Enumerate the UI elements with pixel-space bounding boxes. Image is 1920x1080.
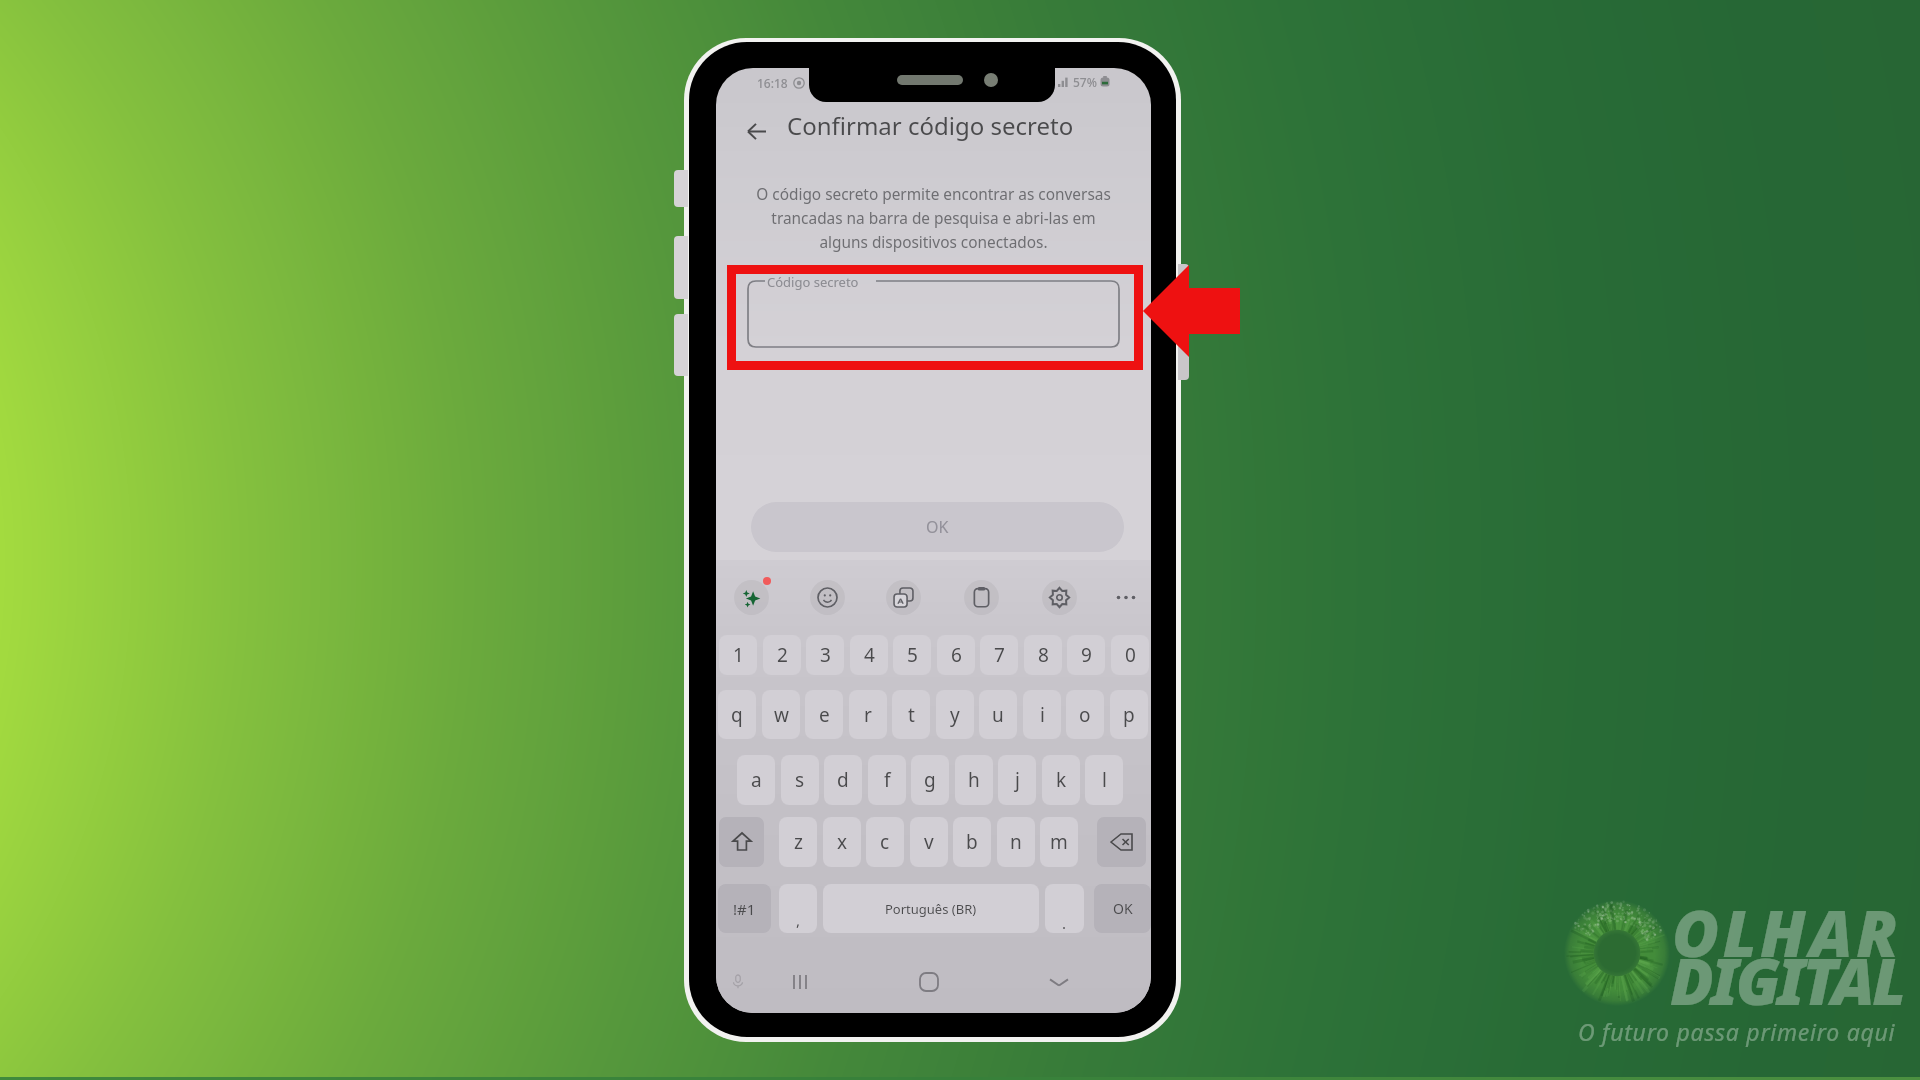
- button[interactable]: t: [892, 690, 930, 739]
- button[interactable]: n: [997, 817, 1035, 867]
- staticText: b: [966, 829, 978, 855]
- button[interactable]: w: [762, 690, 800, 739]
- staticText: l: [1102, 767, 1107, 793]
- button[interactable]: Apagar: [1097, 817, 1146, 867]
- staticText: p: [1123, 702, 1135, 728]
- staticText: OK: [926, 516, 949, 538]
- button[interactable]: c: [866, 817, 904, 867]
- button[interactable]: OK: [1094, 884, 1151, 933]
- staticText: n: [1010, 829, 1022, 855]
- button[interactable]: Sugestões: [734, 580, 769, 615]
- button[interactable]: 2: [763, 635, 801, 675]
- button[interactable]: h: [955, 755, 993, 805]
- button[interactable]: Tradutor: [886, 580, 921, 615]
- staticText: 2: [777, 642, 788, 668]
- staticText: 0: [1125, 642, 1136, 668]
- button[interactable]: g: [911, 755, 949, 805]
- staticText: h: [968, 767, 980, 793]
- staticText: t: [908, 702, 915, 728]
- button[interactable]: Área de transferência: [964, 580, 999, 615]
- button[interactable]: 8: [1024, 635, 1062, 675]
- button[interactable]: e: [805, 690, 843, 739]
- button[interactable]: r: [849, 690, 887, 739]
- button[interactable]: ,: [779, 884, 817, 933]
- button[interactable]: d: [824, 755, 862, 805]
- button[interactable]: !#1: [718, 884, 771, 933]
- button[interactable]: u: [979, 690, 1017, 739]
- button[interactable]: Voltar: [736, 110, 778, 152]
- button[interactable]: 5: [893, 635, 931, 675]
- button[interactable]: z: [779, 817, 817, 867]
- staticText: m: [1050, 829, 1068, 855]
- staticText: i: [1040, 702, 1045, 728]
- staticText: g: [924, 767, 936, 793]
- button[interactable]: Microfone: [720, 964, 756, 1000]
- button[interactable]: x: [823, 817, 861, 867]
- staticText: 8: [1038, 642, 1049, 668]
- staticText: x: [837, 829, 848, 855]
- staticText: r: [864, 702, 872, 728]
- button[interactable]: Recentes: [782, 964, 818, 1000]
- staticText: DIGITAL: [1670, 937, 1904, 1024]
- staticText: e: [819, 702, 830, 728]
- button[interactable]: y: [936, 690, 974, 739]
- staticText: s: [795, 767, 805, 793]
- button[interactable]: b: [953, 817, 991, 867]
- staticText: c: [880, 829, 890, 855]
- staticText: o: [1079, 702, 1091, 728]
- staticText: 4: [864, 642, 875, 668]
- button[interactable]: m: [1040, 817, 1078, 867]
- button[interactable]: o: [1066, 690, 1104, 739]
- button[interactable]: 7: [980, 635, 1018, 675]
- staticText: 1: [733, 642, 744, 668]
- staticText: .: [1062, 913, 1067, 933]
- staticText: OK: [1113, 899, 1133, 918]
- button[interactable]: Código secreto: [748, 281, 1119, 347]
- button[interactable]: l: [1085, 755, 1123, 805]
- button[interactable]: 3: [806, 635, 844, 675]
- button[interactable]: Emojis: [810, 580, 845, 615]
- staticText: w: [774, 702, 789, 728]
- staticText: 16:18: [757, 75, 788, 91]
- staticText: ,: [796, 910, 801, 930]
- button[interactable]: v: [910, 817, 948, 867]
- button[interactable]: 0: [1111, 635, 1149, 675]
- staticText: O futuro passa primeiro aqui: [1578, 1016, 1896, 1047]
- staticText: 7: [994, 642, 1005, 668]
- staticText: f: [884, 767, 891, 793]
- staticText: O código secreto permite encontrar as co…: [734, 184, 1133, 253]
- button[interactable]: q: [718, 690, 756, 739]
- staticText: k: [1056, 767, 1067, 793]
- button[interactable]: f: [868, 755, 906, 805]
- staticText: !#1: [733, 899, 756, 919]
- button[interactable]: j: [998, 755, 1036, 805]
- button[interactable]: Shift: [719, 817, 764, 867]
- button[interactable]: Início: [911, 964, 947, 1000]
- button[interactable]: 1: [719, 635, 757, 675]
- button[interactable]: i: [1023, 690, 1061, 739]
- staticText: d: [837, 767, 849, 793]
- button[interactable]: Fechar teclado: [1041, 964, 1077, 1000]
- button[interactable]: Português (BR): [823, 884, 1039, 933]
- button[interactable]: Mais opções: [1109, 580, 1144, 615]
- staticText: Português (BR): [885, 900, 977, 918]
- button[interactable]: a: [737, 755, 775, 805]
- staticText: Confirmar código secreto: [787, 109, 1074, 142]
- button[interactable]: .: [1045, 884, 1084, 933]
- staticText: Código secreto: [767, 273, 859, 291]
- staticText: a: [751, 767, 762, 793]
- button[interactable]: Configurações: [1042, 580, 1077, 615]
- staticText: z: [794, 829, 803, 855]
- button[interactable]: k: [1042, 755, 1080, 805]
- staticText: 9: [1081, 642, 1092, 668]
- staticText: u: [992, 702, 1004, 728]
- button[interactable]: p: [1110, 690, 1148, 739]
- button[interactable]: s: [781, 755, 819, 805]
- button[interactable]: OK: [751, 502, 1124, 552]
- button[interactable]: 9: [1067, 635, 1105, 675]
- staticText: 57%: [1073, 74, 1097, 90]
- button[interactable]: 6: [937, 635, 975, 675]
- staticText: y: [950, 702, 960, 728]
- button[interactable]: 4: [850, 635, 888, 675]
- staticText: q: [731, 702, 743, 728]
